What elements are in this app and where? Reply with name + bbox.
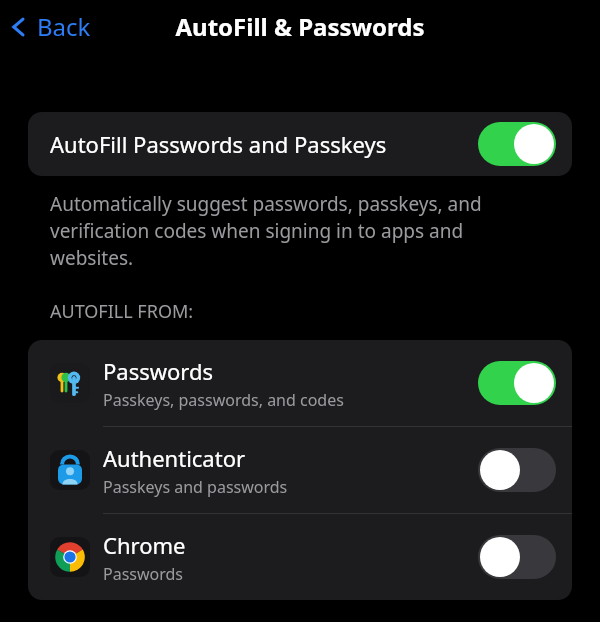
- staticText: AutoFill Passwords and Passkeys: [50, 129, 478, 159]
- button[interactable]: Toggle off: [478, 448, 556, 492]
- staticText: AUTOFILL FROM:: [50, 299, 194, 324]
- button[interactable]: Passwords: [28, 340, 572, 426]
- staticText: Chrome: [103, 530, 186, 560]
- staticText: Passkeys and passwords: [103, 476, 288, 498]
- other: Back: [8, 16, 30, 38]
- button[interactable]: Back: [8, 10, 91, 43]
- button[interactable]: Toggle off: [478, 535, 556, 579]
- staticText: Authenticator: [103, 443, 246, 473]
- button[interactable]: Toggle on: [478, 122, 556, 166]
- button[interactable]: AutoFill Passwords and Passkeys: [28, 112, 572, 176]
- staticText: Back: [37, 10, 91, 43]
- staticText: AutoFill & Passwords: [175, 10, 425, 43]
- button[interactable]: Authenticator: [28, 427, 572, 513]
- staticText: Passwords: [103, 563, 184, 585]
- staticText: Passwords: [103, 356, 214, 386]
- button[interactable]: Toggle on: [478, 361, 556, 405]
- staticText: Passkeys, passwords, and codes: [103, 389, 344, 411]
- button[interactable]: Chrome: [28, 514, 572, 600]
- staticText: Automatically suggest passwords, passkey…: [50, 191, 510, 271]
